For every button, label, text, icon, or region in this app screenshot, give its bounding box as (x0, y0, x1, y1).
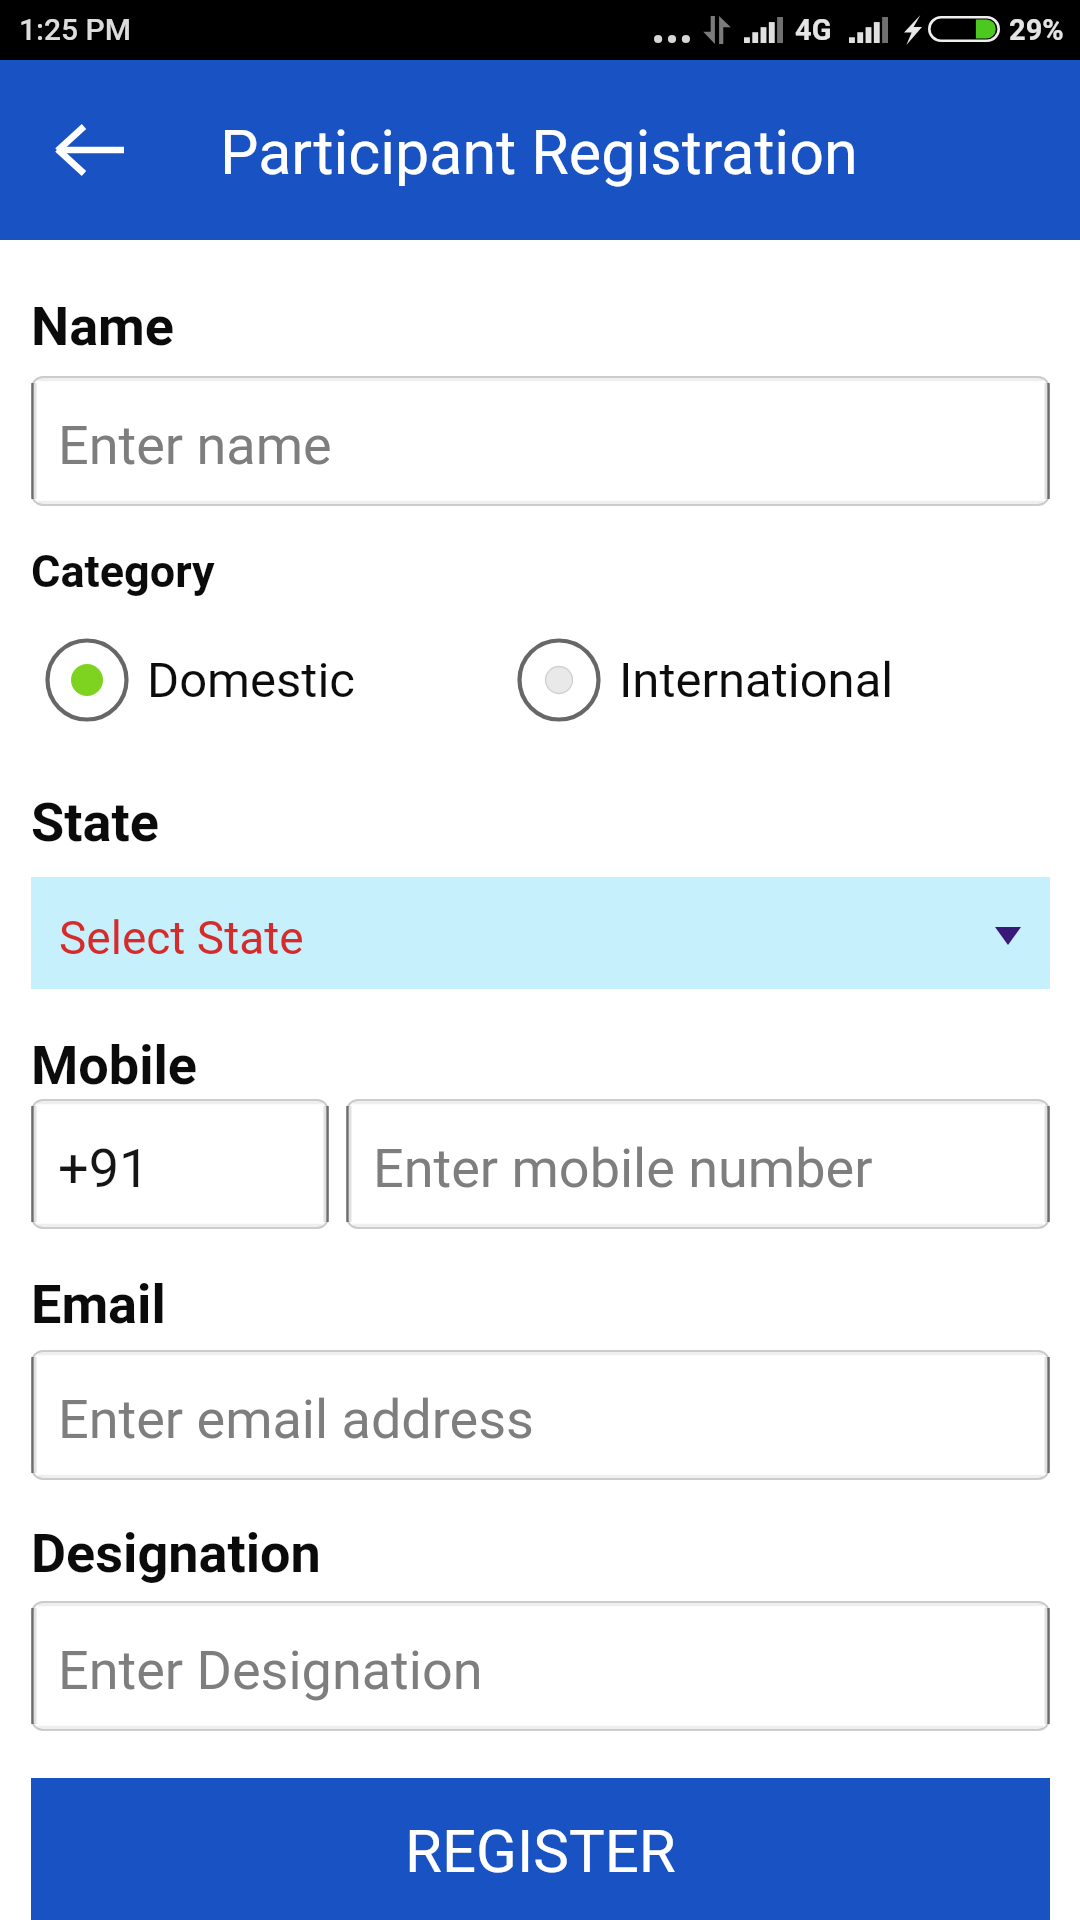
staticText: Category (31, 545, 215, 598)
staticText: Select State (59, 911, 304, 965)
staticText: Mobile (31, 1034, 198, 1097)
staticText: +91 (58, 1137, 150, 1200)
button[interactable]: REGISTER (31, 1778, 1050, 1920)
staticText: Enter email address (58, 1388, 534, 1451)
button[interactable]: Enter name (31, 376, 1050, 506)
staticText: Enter name (58, 414, 332, 477)
button[interactable]: Select State (31, 877, 1050, 989)
button[interactable]: Domestic (45, 638, 355, 722)
staticText: Domestic (147, 652, 355, 709)
staticText: Designation (31, 1522, 321, 1585)
staticText: 4G (795, 13, 832, 47)
button[interactable]: +91 (31, 1099, 329, 1229)
button[interactable]: Enter mobile number (346, 1099, 1050, 1229)
staticText: Participant Registration (220, 117, 858, 188)
staticText: Email (31, 1273, 166, 1336)
button[interactable]: Enter Designation (31, 1601, 1050, 1731)
staticText: Name (31, 295, 175, 358)
button[interactable]: Enter email address (31, 1350, 1050, 1480)
staticText: Enter mobile number (373, 1137, 873, 1200)
staticText: State (31, 791, 159, 854)
staticText: Enter Designation (58, 1639, 483, 1702)
button[interactable]: Back (22, 82, 158, 218)
staticText: REGISTER (405, 1816, 676, 1886)
staticText: 29% (1009, 13, 1064, 47)
staticText: 1:25 PM (19, 12, 132, 47)
button[interactable]: International (517, 638, 894, 722)
staticText: International (619, 652, 894, 709)
